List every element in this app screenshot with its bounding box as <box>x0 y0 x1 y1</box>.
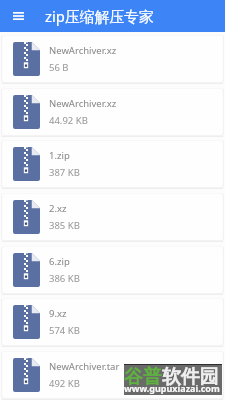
staticText: 44.92 KB <box>49 114 88 127</box>
button[interactable]: 9.xz <box>3 299 222 345</box>
button[interactable]: NewArchiver.xz <box>3 89 222 135</box>
button[interactable]: NewArchiver.xz <box>3 36 222 82</box>
staticText: 6.zip <box>49 255 70 268</box>
staticText: 1.zip <box>49 149 70 162</box>
staticText: 9.xz <box>49 307 67 320</box>
button[interactable]: Open navigation menu <box>0 0 36 32</box>
staticText: 492 KB <box>49 377 80 390</box>
button[interactable]: NewArchiver.tar <box>3 352 222 398</box>
staticText: 385 KB <box>49 219 80 232</box>
staticText: 软件园 <box>162 365 219 389</box>
button[interactable]: 1.zip <box>3 141 222 187</box>
staticText: NewArchiver.xz <box>49 44 117 57</box>
staticText: 387 KB <box>49 166 80 179</box>
button[interactable]: 2.xz <box>3 194 222 240</box>
staticText: 574 KB <box>49 324 80 337</box>
staticText: NewArchiver.xz <box>49 97 117 110</box>
staticText: NewArchiver.tar <box>49 360 120 373</box>
button[interactable]: 6.zip <box>3 247 222 293</box>
staticText: 386 KB <box>49 272 80 285</box>
staticText: www.gupuxiazai.com <box>124 382 220 394</box>
staticText: zip压缩解压专家 <box>45 6 154 26</box>
staticText: 56 B <box>49 61 69 74</box>
staticText: 2.xz <box>49 202 67 215</box>
staticText: 谷普 <box>124 365 162 389</box>
